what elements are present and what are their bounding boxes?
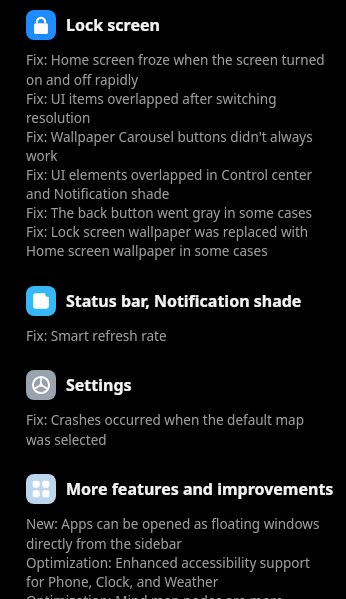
staticText: Settings [66,374,132,396]
other: Lock screen [26,10,56,40]
staticText: Fix: Home screen froze when the screen t… [26,51,328,260]
button[interactable]: Lock screen [0,10,346,40]
other: Status bar, Notification shade [26,286,56,316]
staticText: More features and improvements [66,478,334,500]
other: Settings [26,370,56,400]
staticText: Status bar, Notification shade [66,290,302,312]
other: More features and improvements [26,474,56,504]
button[interactable]: Status bar, Notification shade [0,286,346,316]
button[interactable]: Settings [0,370,346,400]
button[interactable]: More features and improvements [0,474,346,504]
staticText: Fix: Smart refresh rate [26,327,328,345]
staticText: New: Apps can be opened as floating wind… [26,515,328,599]
staticText: Lock screen [66,14,160,36]
staticText: Fix: Crashes occurred when the default m… [26,411,328,449]
